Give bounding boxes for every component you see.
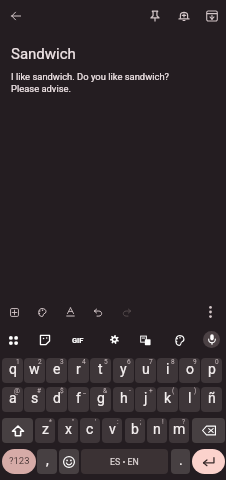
staticText: I like sandwich. Do you like sandwich? P… — [11, 71, 170, 94]
button[interactable]: Formatting — [60, 302, 80, 322]
staticText: s — [31, 390, 39, 406]
staticText: # — [37, 387, 42, 395]
button[interactable]: v — [102, 418, 122, 443]
button[interactable]: s — [24, 387, 45, 412]
staticText: ; — [140, 418, 142, 426]
staticText: . — [179, 452, 183, 468]
button[interactable]: Stickers — [35, 330, 55, 350]
staticText: 6 — [127, 358, 131, 366]
button[interactable]: More options — [200, 302, 220, 322]
button[interactable]: n — [147, 418, 167, 443]
staticText: k — [164, 390, 172, 406]
button[interactable]: Settings — [104, 329, 124, 349]
staticText: f — [76, 390, 81, 406]
staticText: & — [103, 387, 108, 395]
button[interactable]: Apps — [3, 330, 23, 350]
button[interactable]: Pin — [145, 6, 165, 26]
button[interactable]: Shift — [2, 418, 33, 443]
staticText: _ — [83, 387, 86, 395]
staticText: , — [46, 452, 49, 468]
staticText: w — [29, 361, 40, 377]
staticText: 7 — [149, 358, 153, 366]
button[interactable]: . — [171, 449, 190, 474]
staticText: x — [65, 421, 72, 437]
staticText: e — [53, 361, 61, 377]
staticText: ) — [194, 387, 197, 395]
button[interactable]: a — [2, 387, 23, 412]
button[interactable]: e — [46, 358, 67, 383]
button[interactable]: , — [37, 449, 57, 474]
button[interactable]: c — [80, 418, 100, 443]
staticText: 1 — [16, 358, 20, 366]
staticText: ñ — [208, 390, 216, 406]
button[interactable]: Themes — [169, 330, 189, 350]
staticText: t — [98, 361, 103, 377]
button[interactable]: i — [157, 358, 178, 383]
button[interactable]: h — [113, 387, 134, 412]
staticText: 5 — [104, 358, 108, 366]
button[interactable]: f — [68, 387, 89, 412]
staticText: r — [76, 361, 81, 377]
staticText: y — [120, 361, 127, 377]
button[interactable]: z — [35, 418, 55, 443]
button[interactable]: Back — [6, 6, 26, 26]
button[interactable]: Enter — [192, 449, 225, 474]
button[interactable]: Undo — [88, 302, 108, 322]
button[interactable]: q — [2, 358, 23, 383]
staticText: z — [42, 421, 49, 437]
staticText: * — [49, 418, 52, 426]
button[interactable]: ?123 — [2, 449, 36, 474]
staticText: ! — [162, 418, 164, 426]
button[interactable]: ES • EN — [81, 449, 168, 474]
staticText: n — [153, 421, 161, 437]
staticText: i — [166, 361, 170, 377]
staticText: 0 — [215, 358, 219, 366]
button[interactable]: l — [179, 387, 200, 412]
staticText: + — [149, 387, 153, 395]
button[interactable]: GIF — [70, 333, 86, 347]
staticText: ?123 — [9, 455, 30, 466]
button[interactable]: w — [24, 358, 45, 383]
staticText: g — [97, 390, 105, 406]
button[interactable]: Add reminder — [174, 6, 194, 26]
button[interactable]: m — [169, 418, 189, 443]
button[interactable]: x — [58, 418, 78, 443]
button[interactable]: Backspace — [192, 418, 225, 443]
staticText: l — [188, 390, 192, 406]
button[interactable]: d — [46, 387, 67, 412]
staticText: q — [9, 361, 17, 377]
staticText: ( — [172, 387, 175, 395]
button[interactable]: o — [179, 358, 200, 383]
staticText: h — [120, 390, 128, 406]
staticText: 4 — [82, 358, 86, 366]
staticText: u — [142, 361, 150, 377]
button[interactable]: b — [125, 418, 145, 443]
button[interactable]: Add attachment — [4, 302, 24, 322]
button[interactable]: Redo — [117, 302, 137, 322]
staticText: o — [186, 361, 194, 377]
button[interactable]: u — [135, 358, 156, 383]
button[interactable]: r — [68, 358, 89, 383]
button[interactable]: ñ — [201, 387, 222, 412]
button[interactable]: Archive — [202, 6, 222, 26]
button[interactable]: t — [90, 358, 111, 383]
button[interactable]: g — [90, 387, 111, 412]
staticText: ? — [182, 418, 186, 426]
button[interactable]: j — [135, 387, 156, 412]
button[interactable]: Translate — [135, 330, 155, 350]
staticText: 2 — [38, 358, 42, 366]
button[interactable]: Background options — [32, 302, 52, 322]
staticText: 8 — [171, 358, 175, 366]
staticText: $ — [60, 387, 64, 395]
button[interactable]: Emoji — [59, 449, 79, 474]
button[interactable]: k — [157, 387, 178, 412]
button[interactable]: y — [113, 358, 134, 383]
staticText: j — [144, 390, 148, 406]
button[interactable]: Voice input — [203, 331, 220, 348]
button[interactable]: p — [201, 358, 222, 383]
staticText: 9 — [193, 358, 197, 366]
staticText: ' — [95, 418, 97, 426]
staticText: 3 — [60, 358, 64, 366]
staticText: a — [9, 390, 17, 406]
staticText: d — [53, 390, 61, 406]
